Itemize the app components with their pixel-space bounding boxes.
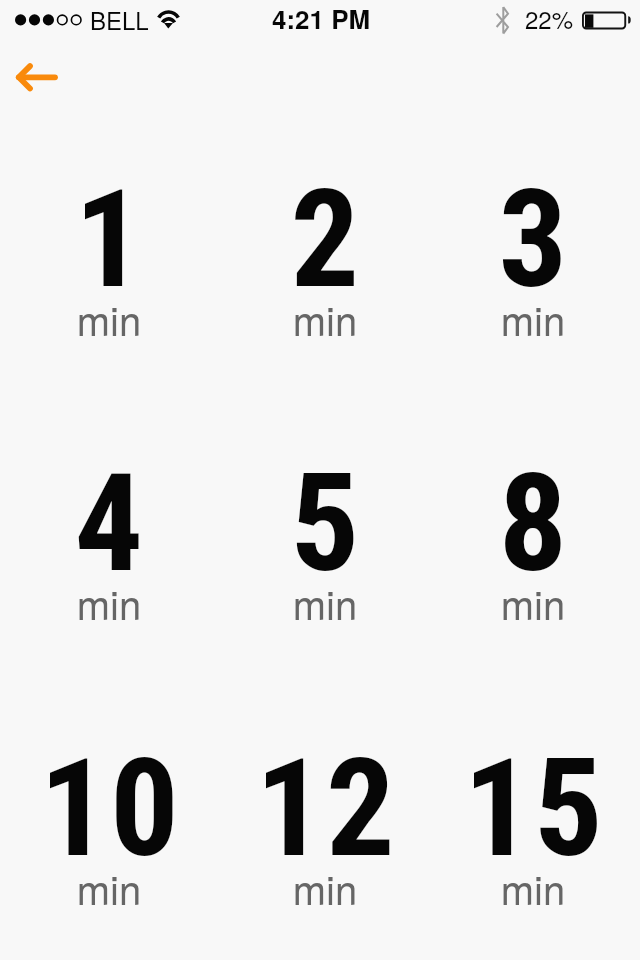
- staticText: 15: [428, 729, 640, 888]
- staticText: BELL: [90, 2, 149, 36]
- staticText: 8: [427, 444, 639, 603]
- staticText: 22%: [525, 1, 574, 35]
- staticText: min: [3, 859, 215, 916]
- button[interactable]: 3: [427, 85, 639, 355]
- staticText: min: [3, 290, 215, 347]
- staticText: 10: [4, 729, 216, 888]
- button[interactable]: 8: [427, 369, 639, 639]
- button[interactable]: 12: [219, 654, 431, 924]
- button[interactable]: 1: [3, 85, 215, 355]
- staticText: min: [427, 574, 639, 631]
- staticText: 2: [219, 160, 431, 319]
- staticText: 3: [427, 160, 639, 319]
- button[interactable]: 15: [427, 654, 639, 924]
- staticText: min: [219, 290, 431, 347]
- staticText: 4:21 PM: [272, 0, 371, 37]
- button[interactable]: 5: [219, 369, 431, 639]
- button[interactable]: 10: [3, 654, 215, 924]
- button[interactable]: 2: [219, 85, 431, 355]
- staticText: min: [219, 859, 431, 916]
- staticText: min: [427, 290, 639, 347]
- staticText: 12: [220, 729, 432, 888]
- button[interactable]: 4: [3, 369, 215, 639]
- staticText: min: [427, 859, 639, 916]
- staticText: min: [3, 574, 215, 631]
- staticText: min: [219, 574, 431, 631]
- staticText: 4: [3, 444, 215, 603]
- staticText: 1: [3, 160, 215, 319]
- staticText: 5: [219, 444, 431, 603]
- button[interactable]: Back: [0, 50, 76, 104]
